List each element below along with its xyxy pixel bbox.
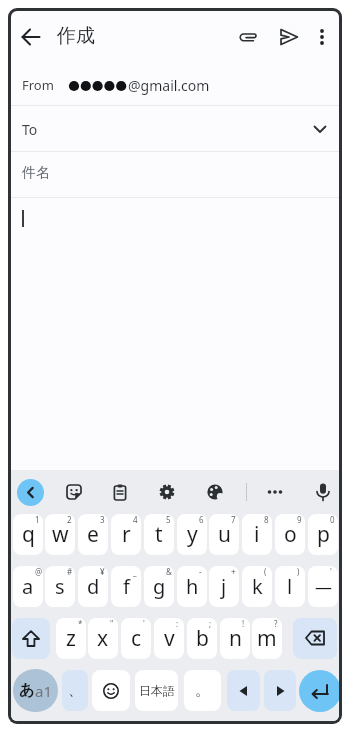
staticText: 0 (330, 514, 335, 525)
button[interactable] (264, 670, 296, 711)
button[interactable] (277, 25, 301, 49)
staticText: ) (297, 566, 300, 577)
button[interactable]: 。 (184, 670, 221, 711)
button[interactable] (19, 25, 43, 49)
button[interactable]: x (88, 618, 118, 659)
staticText: m (257, 624, 277, 653)
staticText: h (186, 573, 199, 600)
button[interactable] (313, 482, 333, 502)
staticText: s (55, 573, 65, 600)
staticText: n (229, 624, 242, 653)
button[interactable]: c (121, 618, 151, 659)
button[interactable]: m (252, 618, 282, 659)
button[interactable]: s (45, 566, 75, 607)
staticText: y (187, 520, 198, 549)
button[interactable] (310, 119, 330, 139)
staticText: 4 (133, 514, 138, 525)
staticText: 件名 (22, 164, 50, 182)
staticText: 日本語 (139, 683, 175, 698)
button[interactable] (64, 482, 84, 502)
staticText: t (155, 520, 163, 549)
button[interactable]: p (308, 514, 338, 555)
button[interactable]: k (242, 566, 272, 607)
staticText: * (78, 618, 83, 629)
button[interactable] (110, 482, 130, 502)
staticText: 9 (297, 514, 302, 525)
staticText: e (87, 520, 99, 549)
staticText: u (218, 520, 231, 549)
staticText: ' (330, 566, 332, 577)
button[interactable]: q (13, 514, 43, 555)
staticText: 2 (67, 514, 72, 525)
staticText: _ (133, 566, 137, 577)
button[interactable] (227, 670, 260, 711)
button[interactable] (17, 479, 44, 506)
staticText: f (123, 573, 130, 600)
button[interactable]: b (187, 618, 217, 659)
button[interactable]: y (177, 514, 207, 555)
staticText: 8 (264, 514, 269, 525)
button[interactable] (205, 482, 225, 502)
staticText: 1 (35, 514, 40, 525)
button[interactable] (312, 25, 332, 49)
staticText: b (196, 624, 209, 653)
staticText: 、 (68, 681, 83, 700)
staticText: 5 (166, 514, 171, 525)
staticText: w (52, 520, 69, 549)
button[interactable]: f (111, 566, 141, 607)
staticText: z (66, 624, 76, 653)
button[interactable] (293, 618, 337, 659)
button[interactable]: r (111, 514, 141, 555)
staticText: x (97, 624, 109, 653)
button[interactable]: l (275, 566, 305, 607)
staticText: To (22, 120, 38, 139)
button[interactable]: t (144, 514, 174, 555)
staticText: d (87, 573, 100, 600)
staticText: a (22, 573, 34, 600)
button[interactable]: h (177, 566, 207, 607)
button[interactable] (157, 482, 177, 502)
staticText: + (231, 566, 236, 577)
staticText: c (131, 624, 142, 653)
button[interactable]: あ (13, 669, 58, 712)
button[interactable]: z (56, 618, 86, 659)
staticText: あ (19, 681, 35, 700)
staticText: o (284, 520, 297, 549)
staticText: From (22, 76, 54, 94)
button[interactable] (236, 25, 260, 49)
staticText: 7 (231, 514, 236, 525)
button[interactable]: d (78, 566, 108, 607)
button[interactable] (92, 670, 130, 711)
button[interactable] (12, 618, 50, 659)
staticText: r (122, 520, 131, 549)
button[interactable]: w (45, 514, 75, 555)
button[interactable]: — (308, 566, 338, 607)
button[interactable]: j (209, 566, 239, 607)
staticText: ' (143, 618, 145, 629)
button[interactable] (299, 670, 339, 712)
button[interactable] (11, 105, 339, 151)
staticText: q (22, 520, 35, 549)
button[interactable]: e (78, 514, 108, 555)
button[interactable]: u (209, 514, 239, 555)
button[interactable]: i (242, 514, 272, 555)
staticText: i (254, 520, 260, 549)
button[interactable] (11, 63, 339, 105)
button[interactable] (11, 151, 339, 197)
button[interactable]: 、 (62, 670, 88, 711)
staticText: @ (35, 566, 43, 577)
button[interactable]: g (144, 566, 174, 607)
staticText: : (176, 618, 179, 629)
staticText: ? (274, 618, 278, 629)
button[interactable] (263, 482, 287, 502)
staticText: g (153, 573, 166, 600)
button[interactable]: 日本語 (135, 670, 178, 711)
button[interactable]: o (275, 514, 305, 555)
button[interactable]: v (154, 618, 184, 659)
button[interactable]: a (13, 566, 43, 607)
button[interactable]: n (220, 618, 250, 659)
staticText: @gmail.com (128, 76, 210, 95)
staticText: 6 (199, 514, 204, 525)
staticText: 作成 (57, 24, 95, 48)
staticText: — (315, 575, 332, 598)
